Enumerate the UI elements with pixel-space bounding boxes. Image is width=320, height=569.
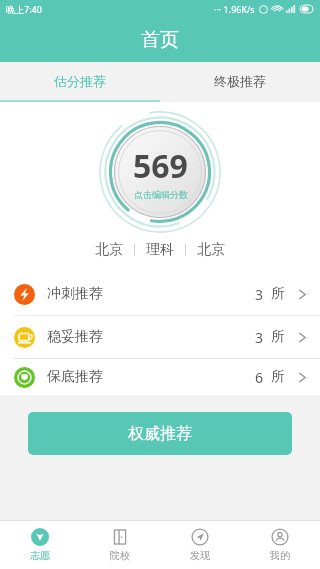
- staticText: 保底推荐: [47, 368, 103, 386]
- staticText: 志愿: [30, 549, 50, 562]
- staticText: 终极推荐: [214, 73, 266, 89]
- staticText: 晚上7:40: [6, 3, 42, 15]
- staticText: 所: [271, 368, 285, 386]
- staticText: 首页: [141, 28, 179, 52]
- staticText: ··· 1.96K/s: [214, 3, 255, 15]
- staticText: 理科: [146, 241, 174, 259]
- button[interactable]: 志愿: [0, 521, 80, 569]
- staticText: 所: [271, 285, 285, 303]
- button[interactable]: 我的: [240, 521, 320, 569]
- button[interactable]: 权威推荐: [28, 412, 292, 455]
- button[interactable]: 院校: [80, 521, 160, 569]
- staticText: 估分推荐: [54, 73, 106, 89]
- staticText: 3: [255, 328, 264, 347]
- staticText: 北京: [95, 241, 123, 259]
- button[interactable]: 冲刺推荐: [0, 273, 320, 315]
- button[interactable]: 569: [133, 144, 188, 200]
- button[interactable]: 保底推荐: [0, 359, 320, 395]
- button[interactable]: 发现: [160, 521, 240, 569]
- button[interactable]: 北京: [197, 241, 225, 259]
- button[interactable]: 北京: [95, 241, 123, 259]
- button[interactable]: 终极推荐: [160, 62, 320, 100]
- staticText: 点击编辑分数: [134, 189, 188, 200]
- staticText: 院校: [110, 549, 130, 562]
- staticText: 我的: [270, 549, 290, 562]
- staticText: 权威推荐: [128, 424, 192, 444]
- staticText: 3: [255, 285, 264, 304]
- staticText: 北京: [197, 241, 225, 259]
- staticText: 冲刺推荐: [47, 285, 103, 303]
- staticText: 稳妥推荐: [47, 328, 103, 346]
- staticText: 所: [271, 328, 285, 346]
- button[interactable]: 估分推荐: [0, 62, 160, 100]
- staticText: 569: [133, 144, 188, 188]
- button[interactable]: 稳妥推荐: [0, 316, 320, 358]
- staticText: 6: [255, 368, 264, 387]
- staticText: 发现: [190, 549, 210, 562]
- button[interactable]: 理科: [146, 241, 174, 259]
